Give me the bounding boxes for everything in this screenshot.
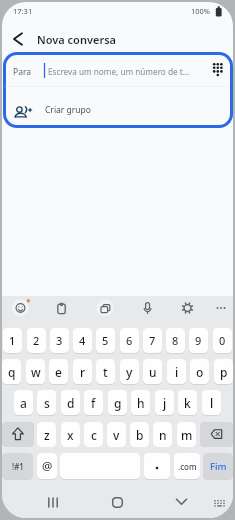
button[interactable]: p	[214, 359, 233, 384]
button[interactable]: 1	[3, 328, 22, 353]
staticText: Para	[13, 66, 32, 78]
staticText: 3	[56, 333, 63, 348]
button[interactable]: o	[190, 359, 209, 384]
staticText: r	[80, 364, 86, 380]
button[interactable]: z	[37, 422, 56, 447]
button[interactable]: i	[167, 359, 186, 384]
staticText: o	[196, 364, 204, 380]
staticText: c	[91, 427, 97, 443]
button[interactable]: 8	[166, 328, 185, 353]
staticText: 17:31	[13, 6, 33, 16]
staticText: e	[55, 364, 62, 380]
staticText: k	[184, 395, 191, 411]
staticText: p	[220, 364, 228, 380]
button[interactable]: k	[178, 390, 197, 415]
button[interactable]	[211, 298, 231, 318]
staticText: @	[42, 458, 53, 474]
button[interactable]	[2, 422, 34, 447]
button[interactable]: g	[108, 390, 127, 415]
button[interactable]: 2	[27, 328, 46, 353]
button[interactable]: v	[107, 422, 126, 447]
staticText: Escreva um nome, um número de t...	[48, 66, 190, 77]
staticText: f	[91, 395, 96, 411]
staticText: Fim	[210, 460, 227, 473]
staticText: 9	[195, 333, 202, 348]
button[interactable]: 3	[50, 328, 69, 353]
staticText: m	[181, 427, 193, 443]
staticText: q	[8, 364, 16, 380]
button[interactable]: Fim	[203, 453, 233, 479]
button[interactable]	[178, 298, 198, 318]
button[interactable]: 6	[120, 328, 139, 353]
staticText: x	[67, 427, 74, 443]
button[interactable]: n	[153, 422, 172, 447]
button[interactable]	[206, 491, 230, 514]
staticText: 0	[219, 333, 226, 348]
button[interactable]: f	[84, 390, 103, 415]
staticText: b	[136, 427, 144, 443]
button[interactable]: s	[37, 390, 56, 415]
button[interactable]: 5	[96, 328, 115, 353]
staticText: u	[149, 364, 157, 380]
button[interactable]: q	[2, 359, 21, 384]
staticText: !#1	[12, 461, 24, 472]
staticText: a	[20, 395, 27, 411]
staticText: 100%	[191, 6, 211, 16]
button[interactable]: e	[49, 359, 68, 384]
staticText: j	[163, 395, 167, 411]
button[interactable]: c	[84, 422, 103, 447]
button[interactable]	[144, 453, 170, 479]
staticText: d	[67, 395, 75, 411]
button[interactable]: @	[37, 453, 57, 479]
button[interactable]	[95, 298, 115, 318]
button[interactable]: 7	[143, 328, 162, 353]
staticText: l	[210, 395, 214, 411]
staticText: i	[175, 364, 179, 380]
button[interactable]: l	[202, 390, 221, 415]
button[interactable]	[138, 298, 158, 318]
staticText: w	[31, 364, 41, 380]
button[interactable]: 0	[213, 328, 232, 353]
button[interactable]: 9	[189, 328, 208, 353]
button[interactable]: h	[131, 390, 150, 415]
staticText: 8	[172, 333, 179, 348]
button[interactable]	[52, 298, 72, 318]
staticText: 6	[126, 333, 133, 348]
button[interactable]: j	[155, 390, 174, 415]
button[interactable]: d	[61, 390, 80, 415]
button[interactable]	[105, 491, 129, 514]
staticText: g	[114, 395, 122, 411]
staticText: 2	[33, 333, 40, 348]
button[interactable]: w	[26, 359, 45, 384]
button[interactable]: m	[177, 422, 196, 447]
button[interactable]: .com	[174, 453, 200, 479]
button[interactable]: r	[73, 359, 92, 384]
staticText: z	[44, 427, 50, 443]
staticText: 5	[102, 333, 109, 348]
button[interactable]: b	[130, 422, 149, 447]
button[interactable]	[11, 298, 31, 318]
staticText: y	[126, 364, 133, 380]
staticText: .com	[178, 461, 197, 472]
staticText: t	[103, 364, 108, 380]
button[interactable]	[169, 491, 193, 514]
button[interactable]: !#1	[2, 453, 33, 479]
button[interactable]: t	[96, 359, 115, 384]
button[interactable]	[200, 422, 233, 447]
button[interactable]	[5, 54, 230, 86]
staticText: 1	[9, 333, 16, 348]
button[interactable]	[8, 28, 32, 50]
staticText: s	[44, 395, 50, 411]
staticText: 4	[79, 333, 86, 348]
staticText: h	[137, 395, 145, 411]
button[interactable]	[41, 491, 65, 514]
staticText: Nova conversa	[37, 32, 117, 47]
button[interactable]: y	[120, 359, 139, 384]
button[interactable]: 4	[73, 328, 92, 353]
staticText: v	[113, 427, 120, 443]
button[interactable]: x	[61, 422, 80, 447]
button[interactable]	[5, 88, 230, 125]
button[interactable]: a	[14, 390, 33, 415]
button[interactable]: u	[143, 359, 162, 384]
